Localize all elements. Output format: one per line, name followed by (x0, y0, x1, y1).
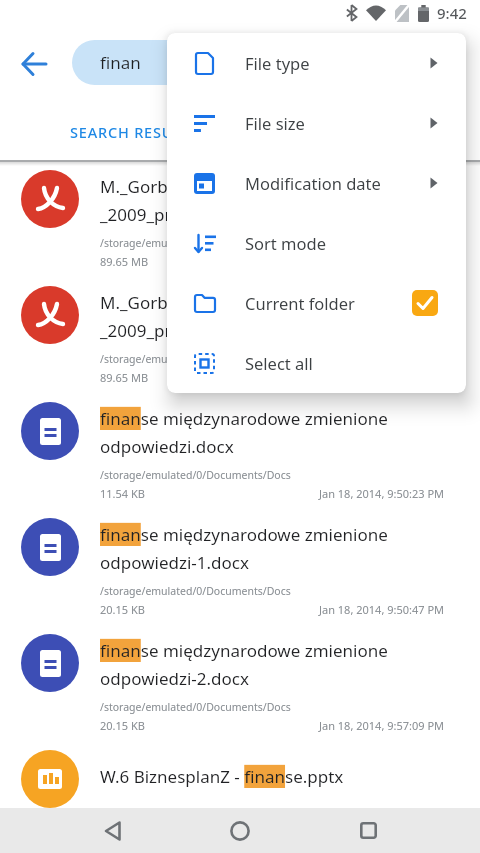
staticText: /storage/emulated/0/Documents/Docs (100, 700, 291, 714)
staticText: 9:42 (437, 3, 467, 23)
staticText: 89.65 MB (100, 370, 149, 385)
staticText: M._Gorbaniuk_Podstawy (100, 175, 297, 198)
staticText: _2009_przeglad.pdf (100, 203, 256, 226)
staticText: finanse międzynarodowe zmienione (100, 523, 388, 546)
staticText: odpowiedzi-1.docx (100, 551, 249, 574)
staticText: 20.15 KB (100, 602, 145, 617)
staticText: Jan 18, 2014, 9:50:23 PM (319, 486, 445, 501)
staticText: Jan 18, 2014, 9:57:09 PM (319, 718, 445, 733)
button[interactable] (14, 44, 54, 84)
staticText: finan (100, 51, 141, 74)
staticText: /storage/emulated/0/Documents/Docs (100, 584, 291, 598)
button[interactable]: SEARCH RESULTS (6) (70, 122, 224, 142)
button[interactable]: W.6 BiznesplanZ - finanse.pptx (0, 742, 480, 808)
staticText: /storage/emulated/0/Documents (100, 236, 263, 250)
staticText: File type (245, 52, 310, 74)
staticText: finanse międzynarodowe zmienione (100, 407, 388, 430)
staticText: odpowiedzi-2.docx (100, 667, 249, 690)
button[interactable]: M._Gorbaniuk_Podstawy (0, 162, 480, 278)
button[interactable]: Current folder (167, 273, 466, 333)
staticText: SEARCH RESULTS (6) (70, 122, 224, 142)
staticText: W.6 BiznesplanZ - finanse.pptx (100, 765, 344, 788)
button[interactable]: M._Gorbaniuk_Podstawy (0, 278, 480, 394)
button[interactable]: File size (167, 93, 466, 153)
staticText: Jan 18, 2014, 9:50:47 PM (319, 602, 445, 617)
button[interactable] (185, 808, 295, 853)
button[interactable]: finan (72, 40, 440, 85)
staticText: Select all (245, 352, 313, 374)
button[interactable]: finanse międzynarodowe zmienione (0, 626, 480, 742)
button[interactable] (57, 808, 167, 853)
button[interactable]: finanse międzynarodowe zmienione (0, 394, 480, 510)
staticText: finanse międzynarodowe zmienione (100, 639, 388, 662)
button[interactable]: Select all (167, 333, 466, 393)
button[interactable]: File type (167, 33, 466, 93)
staticText: /storage/emulated/0/Documents (100, 352, 263, 366)
staticText: 20.15 KB (100, 718, 145, 733)
staticText: Current folder (245, 292, 355, 314)
button[interactable]: finanse międzynarodowe zmienione (0, 510, 480, 626)
staticText: File size (245, 112, 305, 134)
button[interactable]: Sort mode (167, 213, 466, 273)
staticText: 11.54 KB (100, 486, 145, 501)
staticText: M._Gorbaniuk_Podstawy (100, 291, 297, 314)
staticText: Sort mode (245, 232, 326, 254)
staticText: Modification date (245, 172, 381, 194)
staticText: /storage/emulated/0/Documents/Docs (100, 468, 291, 482)
button[interactable] (313, 808, 423, 853)
button[interactable]: Modification date (167, 153, 466, 213)
staticText: 89.65 MB (100, 254, 149, 269)
staticText: odpowiedzi.docx (100, 435, 234, 458)
staticText: _2009_przeglad.pdf (100, 319, 256, 342)
